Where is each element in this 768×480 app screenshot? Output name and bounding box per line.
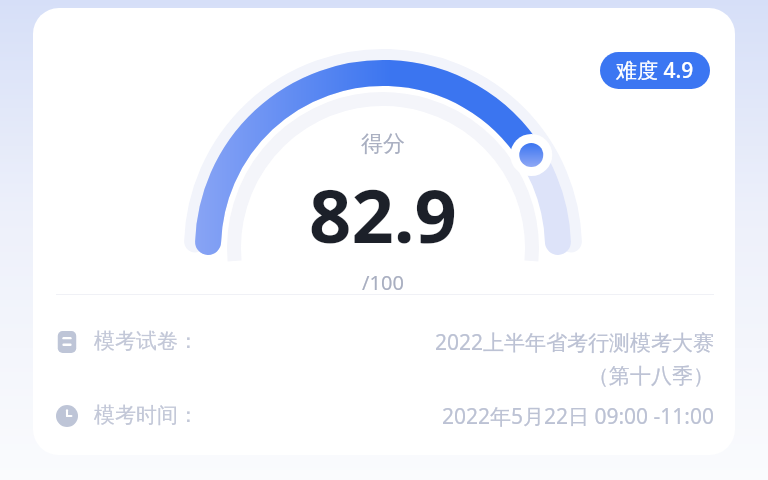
other: Exam time (56, 405, 78, 427)
staticText: 模考时间： (94, 402, 199, 428)
staticText: 2022上半年省考行测模考大赛 (434, 328, 714, 357)
staticText: 82.9 (309, 164, 457, 265)
button[interactable]: 难度 4.9 (600, 52, 710, 89)
button[interactable]: Exam paper (56, 328, 714, 389)
button[interactable] (33, 8, 735, 455)
staticText: 难度 4.9 (616, 56, 694, 85)
staticText: （第十八季） (588, 363, 714, 389)
staticText: 得分 (361, 130, 405, 158)
button[interactable]: Exam time (56, 402, 714, 431)
staticText: 模考试卷： (94, 328, 199, 354)
other: Exam paper (56, 331, 78, 353)
staticText: 2022年5月22日 09:00 -11:00 (441, 402, 714, 431)
staticText: /100 (362, 269, 404, 296)
